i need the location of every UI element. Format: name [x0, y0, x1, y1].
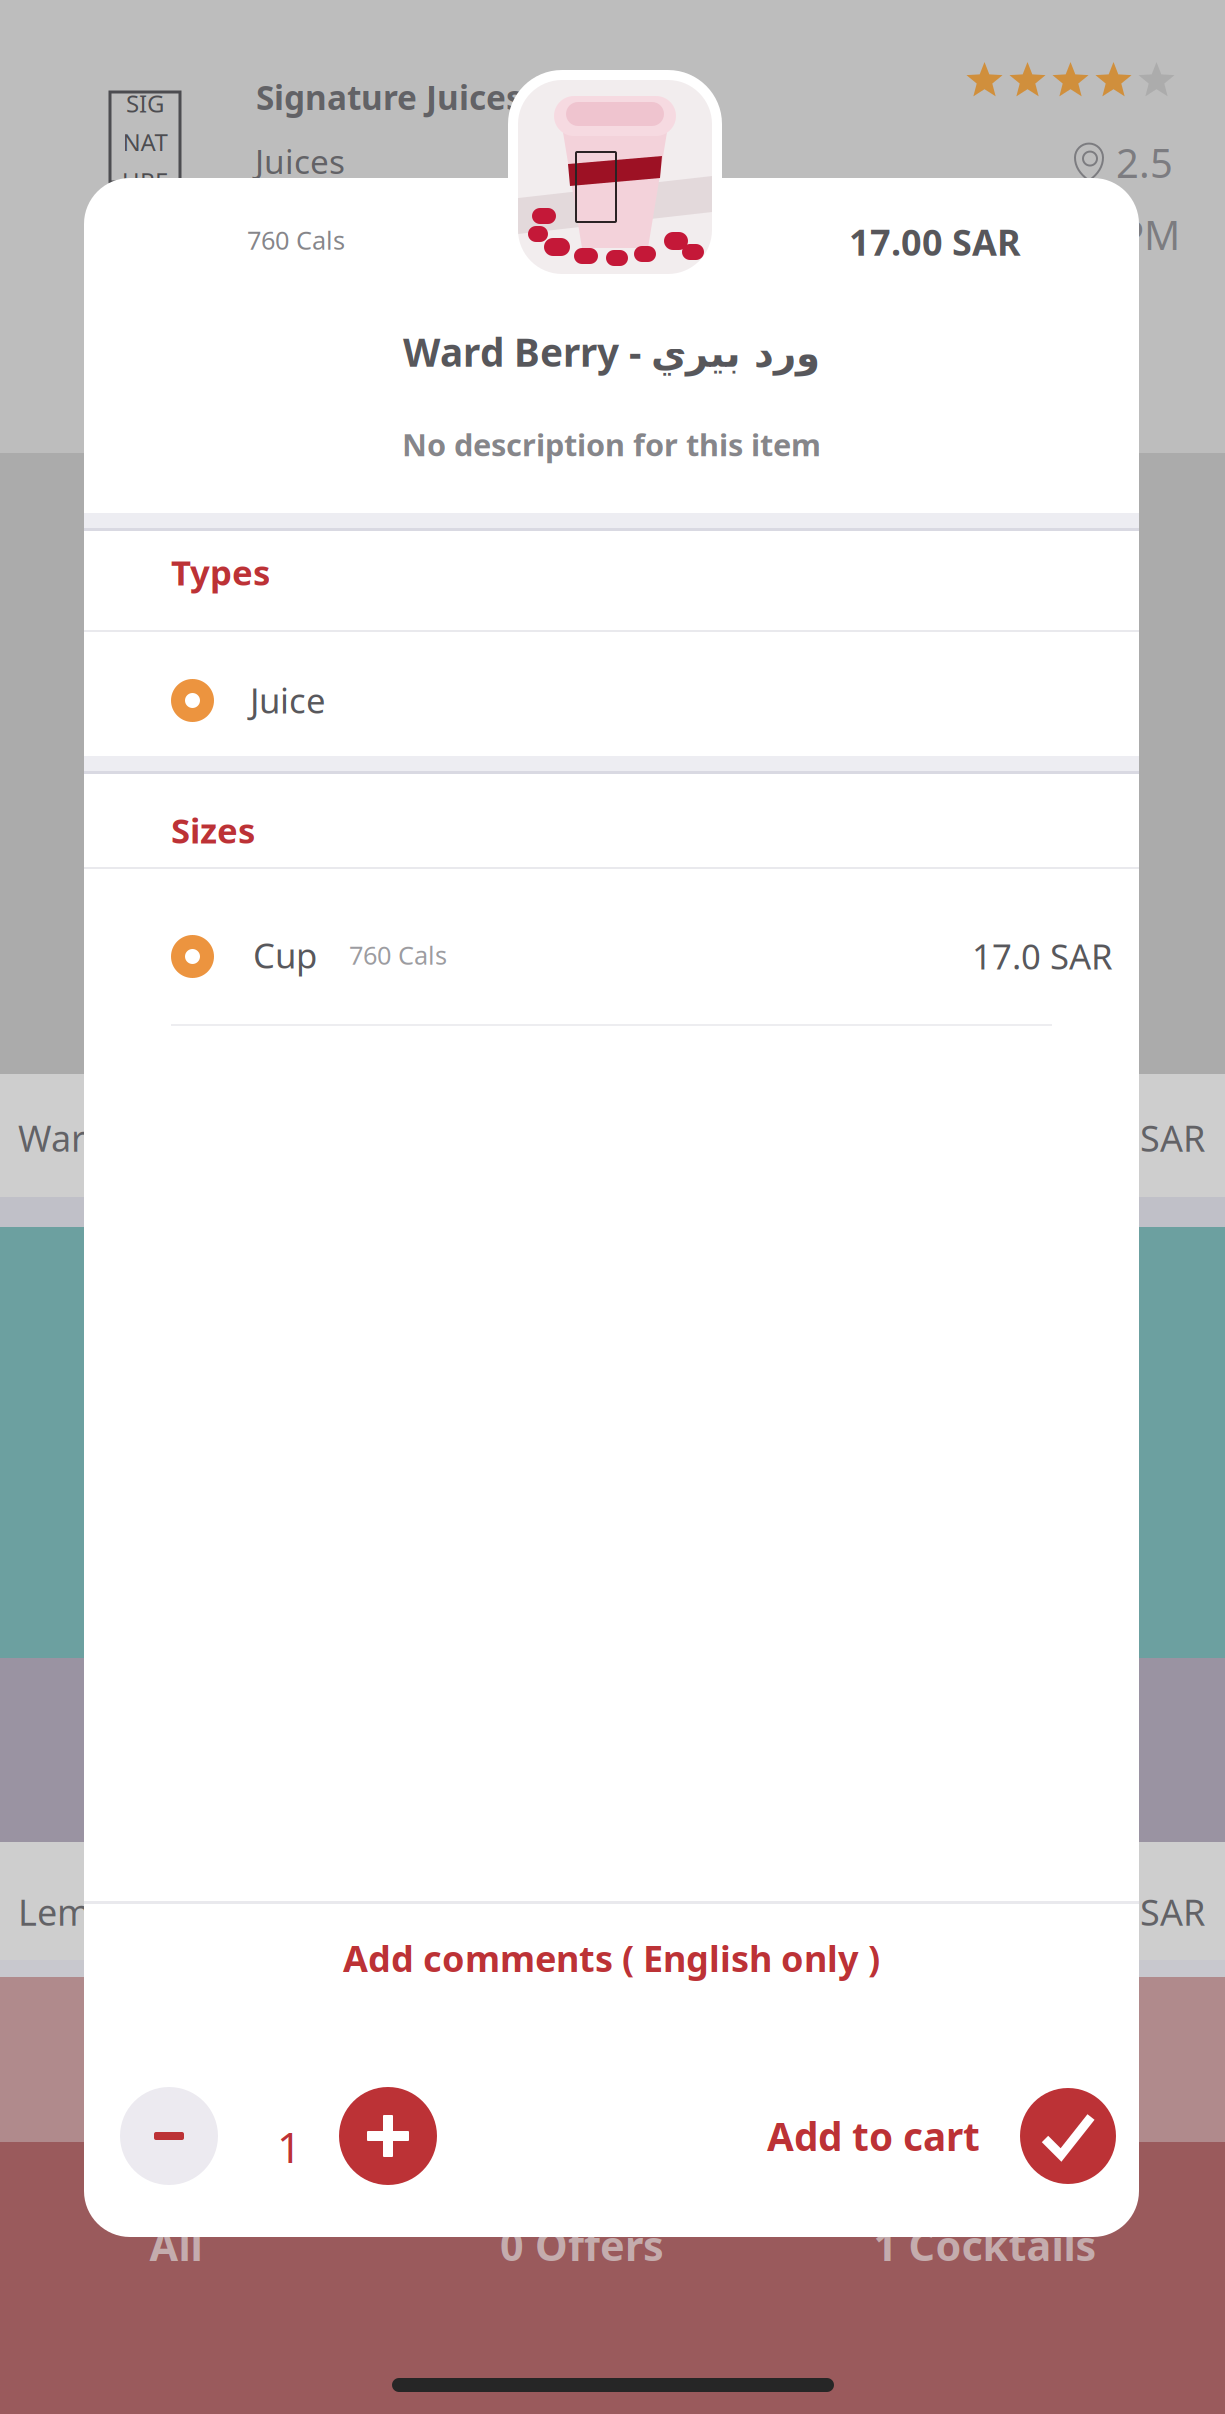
staticText: Ward Berry - ورد بيري [403, 326, 820, 377]
button[interactable]: Cup [84, 869, 1139, 1026]
staticText: Add to cart [767, 2110, 980, 2162]
button[interactable]: All [0, 2222, 352, 2268]
staticText: 2.5 [1116, 136, 1173, 189]
button[interactable]: 0 Offers [380, 2222, 784, 2268]
button[interactable]: Add comments ( English only ) [84, 1921, 1139, 1995]
staticText: 17.0 SAR [1058, 1114, 1205, 1162]
button[interactable]: Increase quantity [339, 2087, 437, 2185]
staticText: 1 Cocktails [873, 2218, 1096, 2272]
staticText: No description for this item [402, 424, 821, 465]
staticText: 760 Cals [349, 938, 447, 972]
staticText: 1 [277, 2118, 301, 2175]
button[interactable]: Juice [84, 632, 1139, 756]
staticText: URE [122, 165, 168, 197]
staticText: Ward Berry - ورد بيري [18, 1114, 367, 1162]
staticText: NAT [122, 126, 167, 158]
staticText: Add comments ( English only ) [343, 1934, 880, 1982]
button[interactable]: 1 Cocktails [784, 2222, 1186, 2268]
staticText: Signature Juices - عصائر [256, 75, 655, 119]
staticText: 760 Cals [247, 223, 345, 257]
staticText: Juices [255, 139, 345, 183]
button[interactable]: Ward Berry - ورد بيري [0, 1074, 1225, 1197]
button[interactable]: Lemon Mint - ليمون نعناع [0, 1847, 1225, 1960]
staticText: PM [1120, 208, 1180, 261]
staticText: 17.0 SAR [972, 933, 1113, 979]
staticText: 17.0 SAR [1058, 1888, 1205, 1936]
staticText: All [149, 2218, 202, 2272]
button[interactable]: Add to cart [767, 2087, 1116, 2185]
staticText: 0 Offers [500, 2218, 664, 2272]
staticText: SIG [126, 87, 164, 119]
staticText: Cup [253, 932, 317, 978]
staticText: Sizes [171, 807, 255, 853]
staticText: Lemon Mint - ليمون نعناع [18, 1888, 420, 1936]
button[interactable]: Decrease quantity [120, 2087, 218, 2185]
staticText: Juice [250, 677, 326, 723]
staticText: Types [171, 549, 270, 595]
staticText: 17.00 SAR [849, 218, 1021, 266]
